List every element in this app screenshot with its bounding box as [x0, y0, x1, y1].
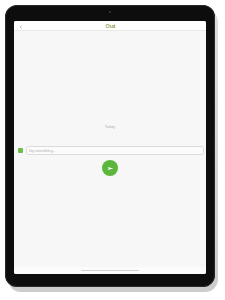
- button[interactable]: Send: [102, 160, 118, 176]
- staticText: Say something…: [29, 148, 56, 153]
- button[interactable]: Back: [16, 22, 25, 31]
- button[interactable]: Attach: [16, 146, 25, 155]
- staticText: Today: [105, 124, 115, 129]
- button[interactable]: Say something…: [26, 146, 204, 155]
- staticText: Chat: [105, 23, 116, 29]
- button[interactable]: Chat: [105, 23, 116, 29]
